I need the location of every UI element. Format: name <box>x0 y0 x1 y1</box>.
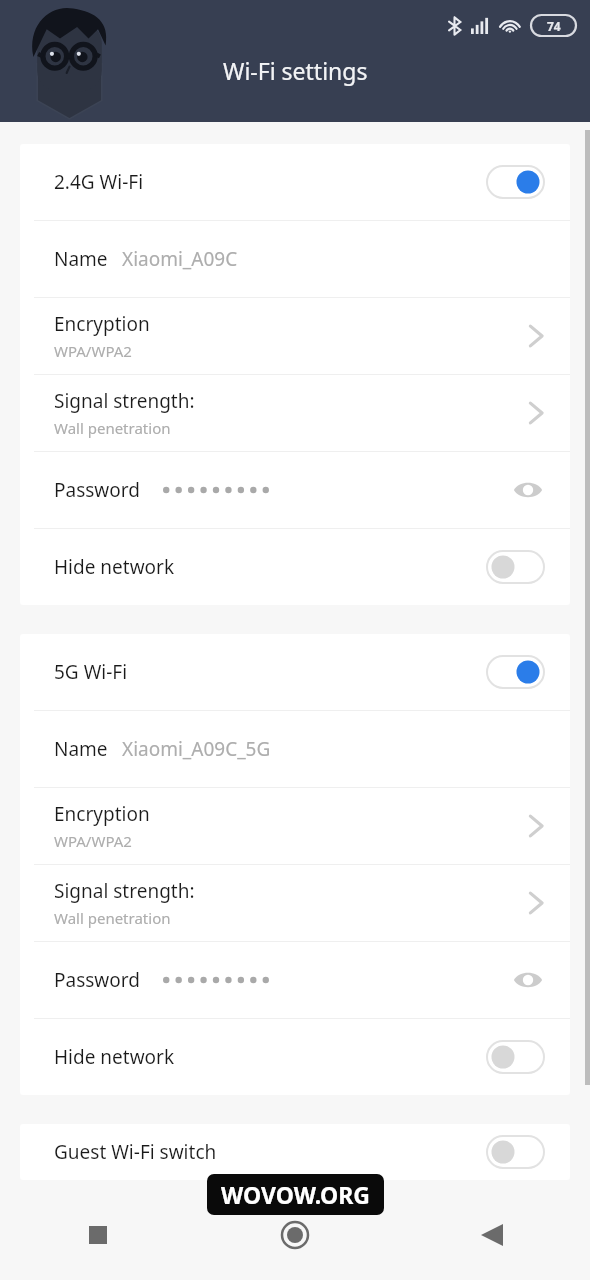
button[interactable]: Show password <box>512 967 544 993</box>
button[interactable]: Password <box>20 452 570 528</box>
staticText: Name <box>54 246 108 272</box>
staticText: WPA/WPA2 <box>54 341 132 361</box>
button[interactable]: Signal strength: <box>20 865 570 941</box>
staticText: 74 <box>547 18 561 34</box>
staticText: Signal strength: <box>54 878 195 904</box>
staticText: Encryption <box>54 801 150 827</box>
staticText: 5G Wi-Fi <box>54 659 128 685</box>
button[interactable]: Off <box>487 1041 544 1073</box>
button[interactable]: Back <box>471 1214 513 1256</box>
other: Open <box>528 400 544 426</box>
button[interactable]: Signal strength: <box>20 375 570 451</box>
other: Open <box>528 813 544 839</box>
staticText: Password <box>54 967 140 993</box>
staticText: 2.4G Wi-Fi <box>54 169 144 195</box>
button[interactable]: Encryption <box>20 298 570 374</box>
button[interactable]: Name <box>20 221 570 297</box>
button[interactable]: Recents <box>77 1214 119 1256</box>
staticText: Name <box>54 736 108 762</box>
button[interactable]: Home <box>274 1214 316 1256</box>
staticText: Xiaomi_A09C_5G <box>122 736 271 762</box>
other: Open <box>528 890 544 916</box>
button[interactable]: Guest Wi-Fi switch <box>20 1124 570 1180</box>
button[interactable]: Off <box>487 551 544 583</box>
button[interactable]: Show password <box>512 477 544 503</box>
button[interactable]: 5G Wi-Fi <box>20 634 570 710</box>
button[interactable]: Off <box>487 1136 544 1168</box>
staticText: Encryption <box>54 311 150 337</box>
button[interactable]: 2.4G Wi-Fi <box>20 144 570 220</box>
staticText: Wall penetration <box>54 908 171 928</box>
staticText: Guest Wi-Fi switch <box>54 1139 217 1165</box>
button[interactable]: On <box>487 166 544 198</box>
other: Open <box>528 323 544 349</box>
staticText: WOVOW.ORG <box>221 1179 370 1210</box>
staticText: Hide network <box>54 554 175 580</box>
staticText: Wall penetration <box>54 418 171 438</box>
button[interactable]: Name <box>20 711 570 787</box>
staticText: Wi-Fi settings <box>223 55 368 86</box>
staticText: Hide network <box>54 1044 175 1070</box>
staticText: Password <box>54 477 140 503</box>
button[interactable]: Hide network <box>20 529 570 605</box>
staticText: Xiaomi_A09C <box>122 246 238 272</box>
staticText: WPA/WPA2 <box>54 831 132 851</box>
button[interactable]: On <box>487 656 544 688</box>
staticText: Signal strength: <box>54 388 195 414</box>
button[interactable]: Encryption <box>20 788 570 864</box>
button[interactable]: Password <box>20 942 570 1018</box>
button[interactable]: Hide network <box>20 1019 570 1095</box>
